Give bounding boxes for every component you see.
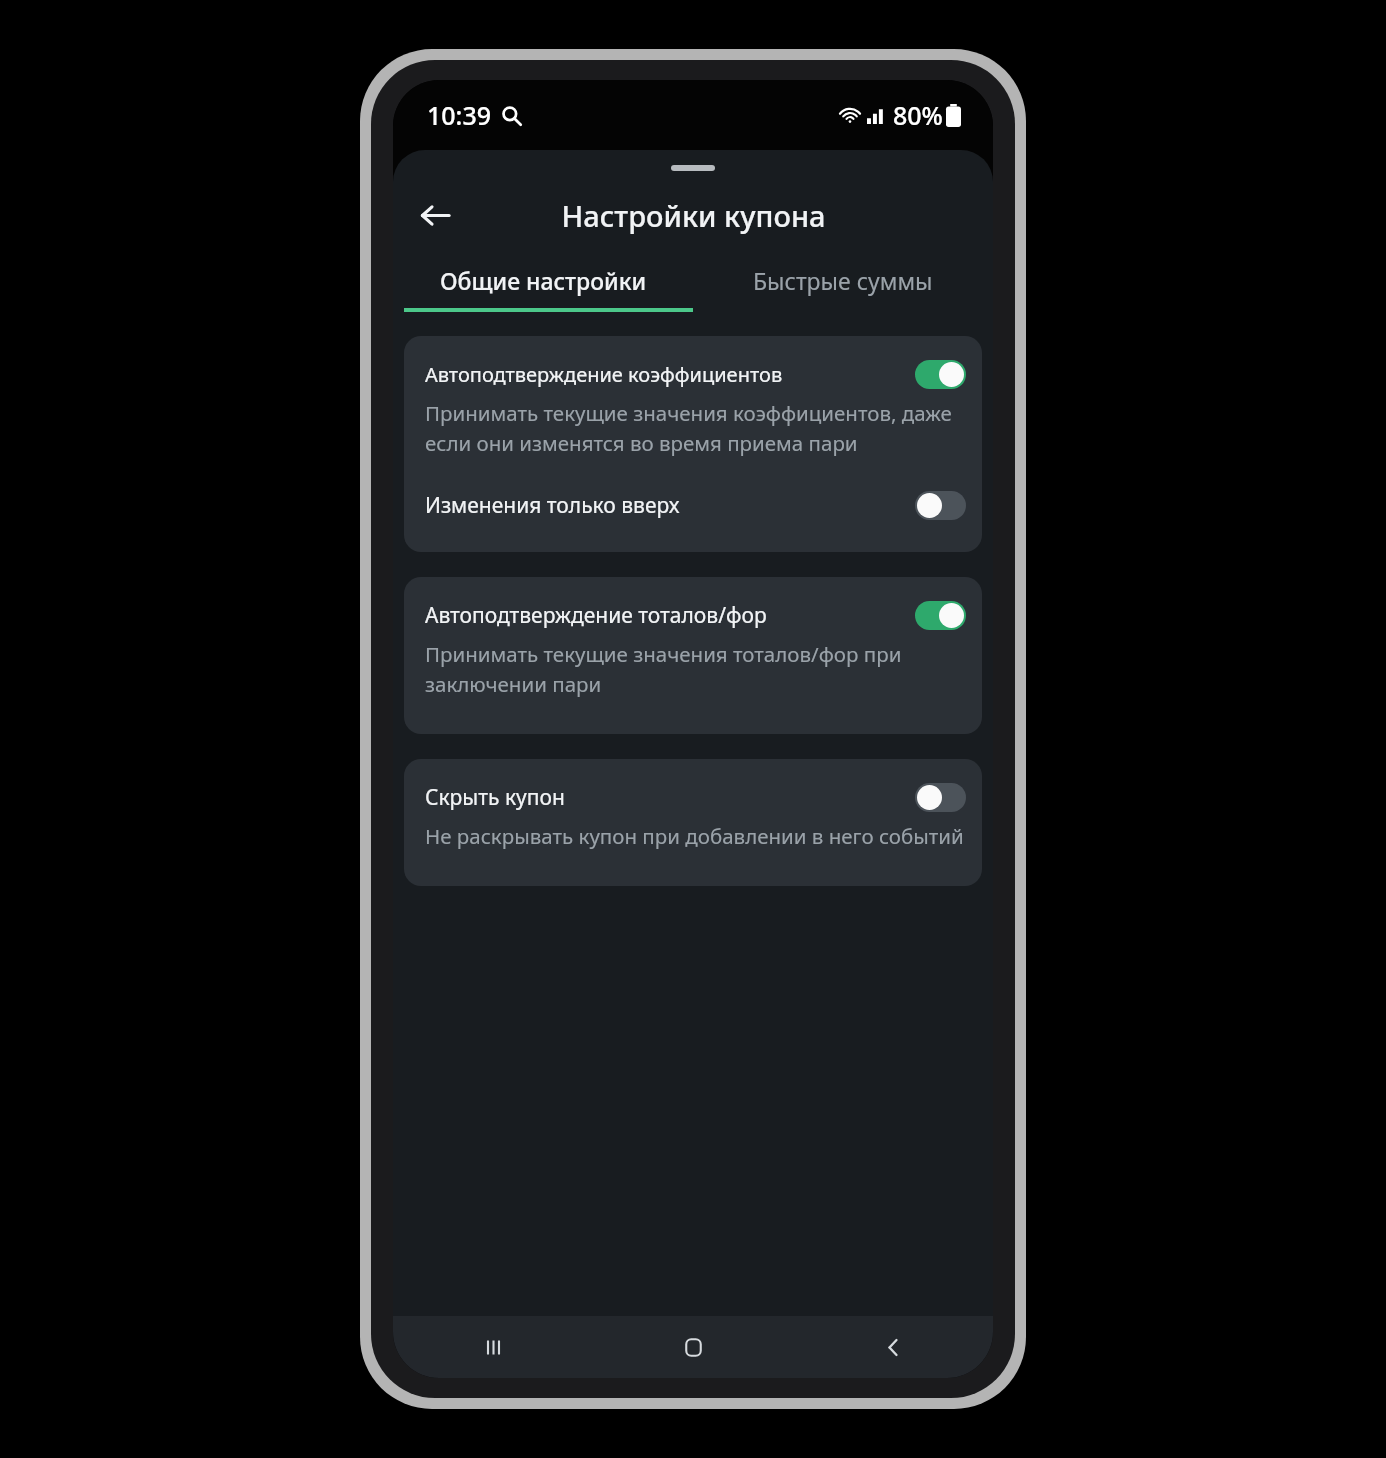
button[interactable]: Recent apps: [393, 1316, 593, 1378]
staticText: 80%: [893, 98, 943, 132]
button[interactable]: Изменения только вверх: [404, 457, 982, 530]
button[interactable]: Disabled: [915, 783, 966, 812]
button[interactable]: Автоподтверждение тоталов/фор: [404, 577, 982, 640]
button[interactable]: Enabled: [915, 601, 966, 630]
button[interactable]: Back: [405, 185, 465, 245]
staticText: Принимать текущие значения коэффициентов…: [425, 399, 969, 457]
button[interactable]: Общие настройки: [393, 252, 693, 308]
staticText: Автоподтверждение тоталов/фор: [425, 601, 907, 630]
staticText: Скрыть купон: [425, 783, 907, 812]
button[interactable]: Быстрые суммы: [693, 252, 993, 308]
staticText: Принимать текущие значения тоталов/фор п…: [425, 640, 969, 698]
button[interactable]: Disabled: [915, 491, 966, 520]
button[interactable]: Home: [593, 1316, 793, 1378]
staticText: Быстрые суммы: [753, 265, 933, 296]
staticText: Не раскрывать купон при добавлении в нег…: [425, 822, 964, 850]
staticText: Настройки купона: [561, 196, 826, 235]
button[interactable]: Back: [793, 1316, 993, 1378]
button[interactable]: Скрыть купон: [404, 759, 982, 822]
button[interactable]: Автоподтверждение коэффициентов: [404, 336, 982, 399]
staticText: Автоподтверждение коэффициентов: [425, 361, 907, 388]
button[interactable]: Enabled: [915, 360, 966, 389]
staticText: Изменения только вверх: [425, 491, 907, 520]
staticText: 10:39: [427, 98, 492, 132]
staticText: Общие настройки: [440, 265, 647, 296]
